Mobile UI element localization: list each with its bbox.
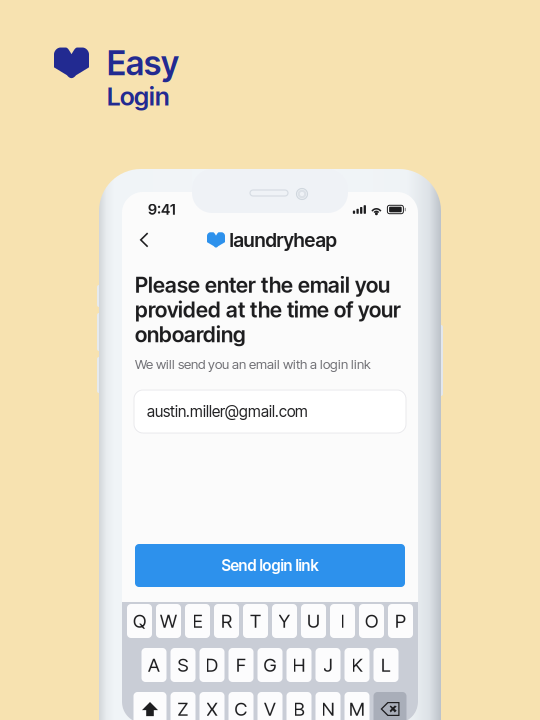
- staticText: Send login link: [221, 556, 318, 575]
- staticText: Easy: [107, 43, 179, 83]
- staticText: F: [236, 654, 246, 676]
- staticText: H: [292, 654, 305, 676]
- staticText: O: [365, 610, 378, 632]
- staticText: austin.miller@gmail.com: [147, 402, 308, 421]
- staticText: U: [307, 610, 320, 632]
- staticText: R: [221, 610, 232, 632]
- staticText: Z: [177, 698, 188, 720]
- staticText: Login: [107, 81, 170, 112]
- staticText: B: [293, 698, 304, 720]
- staticText: V: [264, 698, 276, 720]
- staticText: C: [234, 698, 247, 720]
- staticText: Please enter the email you provided at t…: [135, 272, 401, 347]
- staticText: We will send you an email with a login l…: [135, 356, 371, 372]
- staticText: A: [148, 654, 160, 676]
- staticText: P: [395, 610, 406, 632]
- staticText: J: [323, 654, 332, 676]
- staticText: G: [263, 654, 276, 676]
- staticText: 9:41: [148, 201, 176, 218]
- staticText: S: [177, 654, 188, 676]
- staticText: W: [160, 610, 177, 632]
- staticText: E: [192, 610, 202, 632]
- staticText: Y: [278, 610, 290, 632]
- staticText: L: [381, 654, 391, 676]
- staticText: N: [321, 698, 334, 720]
- staticText: T: [250, 610, 261, 632]
- button[interactable]: Back: [128, 224, 160, 256]
- staticText: D: [205, 654, 218, 676]
- staticText: M: [349, 698, 365, 720]
- staticText: laundryheap: [229, 228, 336, 252]
- staticText: K: [351, 654, 362, 676]
- button[interactable]: Send login link: [135, 544, 405, 587]
- staticText: X: [206, 698, 217, 720]
- staticText: Q: [133, 610, 146, 632]
- staticText: I: [340, 610, 344, 632]
